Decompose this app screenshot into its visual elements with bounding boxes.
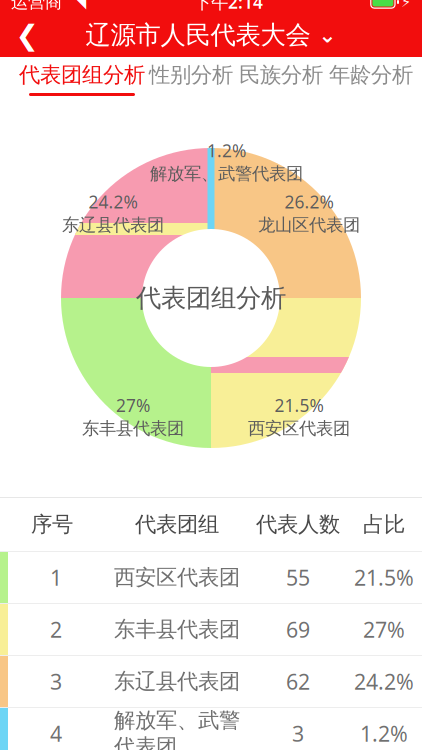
staticText: 运营商 bbox=[11, 0, 62, 13]
staticText: 占比 bbox=[363, 511, 405, 538]
button[interactable]: 4 bbox=[0, 708, 422, 750]
staticText: 3 bbox=[50, 667, 62, 696]
staticText: 辽源市人民代表大会 bbox=[85, 19, 310, 50]
staticText: 1 bbox=[50, 563, 62, 592]
staticText: 西安区代表团 bbox=[114, 564, 240, 591]
staticText: 27% bbox=[116, 394, 150, 417]
staticText: 1.2% bbox=[360, 719, 408, 748]
staticText: 西安区代表团 bbox=[248, 418, 350, 439]
staticText: 21.5% bbox=[354, 563, 414, 592]
staticText: 62 bbox=[286, 667, 310, 696]
button[interactable]: 1 bbox=[0, 552, 422, 603]
staticText: ⌄ bbox=[318, 23, 336, 47]
button[interactable]: 2 bbox=[0, 604, 422, 655]
staticText: 24.2% bbox=[354, 667, 414, 696]
button[interactable]: 民族分析 bbox=[236, 57, 326, 99]
staticText: 代表团组 bbox=[135, 511, 219, 538]
button[interactable]: 3 bbox=[0, 656, 422, 707]
staticText: 24.2% bbox=[88, 190, 137, 213]
staticText: 东丰县代表团 bbox=[114, 616, 240, 643]
button[interactable]: 年龄分析 bbox=[326, 57, 416, 99]
staticText: 民族分析 bbox=[239, 62, 323, 88]
button[interactable]: 性别分析 bbox=[146, 57, 236, 99]
button[interactable]: 返回 bbox=[0, 13, 54, 57]
staticText: 解放军、武警代表团 bbox=[114, 707, 240, 750]
staticText: 代表团组分析 bbox=[19, 62, 145, 88]
staticText: 东辽县代表团 bbox=[114, 668, 240, 695]
staticText: 26.2% bbox=[284, 190, 333, 213]
staticText: 年龄分析 bbox=[329, 62, 413, 88]
staticText: 性别分析 bbox=[149, 62, 233, 88]
staticText: 龙山区代表团 bbox=[258, 214, 360, 236]
staticText: 55 bbox=[286, 563, 310, 592]
staticText: 21.5% bbox=[274, 394, 323, 417]
staticText: 解放军、武警代表团 bbox=[150, 163, 303, 184]
staticText: 3 bbox=[292, 719, 304, 748]
staticText: 代表团组分析 bbox=[136, 282, 286, 313]
staticText: ◥ bbox=[62, 0, 86, 11]
staticText: 4 bbox=[50, 719, 62, 748]
staticText: ⚡︎ bbox=[401, 0, 411, 10]
staticText: 69 bbox=[286, 615, 310, 644]
staticText: 代表人数 bbox=[256, 511, 340, 538]
staticText: 东辽县代表团 bbox=[62, 214, 164, 236]
button[interactable]: 代表团组分析 bbox=[18, 57, 146, 99]
staticText: 1.2% bbox=[207, 139, 246, 162]
staticText: 东丰县代表团 bbox=[82, 418, 184, 439]
staticText: 2 bbox=[50, 615, 62, 644]
staticText: 27% bbox=[363, 615, 405, 644]
staticText: 下午2:14 bbox=[194, 0, 263, 13]
staticText: ❮ bbox=[15, 19, 38, 51]
staticText: 序号 bbox=[31, 511, 73, 538]
button[interactable]: 辽源市人民代表大会 bbox=[77, 13, 344, 57]
